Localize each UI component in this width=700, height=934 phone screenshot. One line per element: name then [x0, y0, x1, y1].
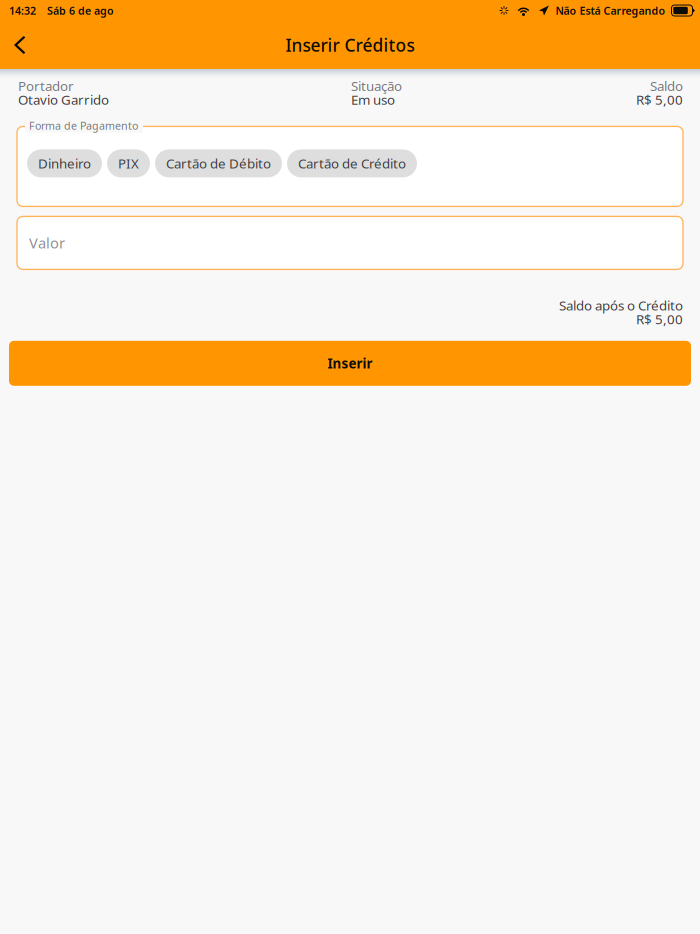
button[interactable]: Dinheiro: [27, 149, 102, 177]
staticText: Portador: [18, 77, 74, 95]
staticText: 14:32: [9, 3, 36, 18]
staticText: Cartão de Crédito: [298, 155, 406, 172]
staticText: Inserir Créditos: [285, 33, 414, 56]
staticText: Não Está Carregando: [555, 3, 665, 18]
button[interactable]: Inserir: [9, 341, 691, 386]
staticText: Valor: [29, 233, 65, 253]
button[interactable]: Cartão de Débito: [155, 149, 282, 177]
staticText: Inserir: [327, 354, 372, 372]
staticText: R$ 5,00: [636, 310, 683, 328]
staticText: Saldo: [650, 77, 683, 95]
staticText: Sáb 6 de ago: [47, 3, 114, 18]
button[interactable]: Cartão de Crédito: [287, 149, 417, 177]
staticText: Dinheiro: [38, 155, 91, 172]
button[interactable]: Voltar: [0, 24, 40, 65]
staticText: Em uso: [351, 91, 395, 108]
button[interactable]: PIX: [107, 149, 150, 177]
staticText: Otavio Garrido: [18, 91, 109, 108]
staticText: Cartão de Débito: [166, 155, 271, 172]
staticText: Situação: [351, 77, 402, 95]
staticText: Saldo após o Crédito: [559, 296, 683, 314]
staticText: Forma de Pagamento: [29, 118, 138, 133]
staticText: R$ 5,00: [636, 91, 683, 108]
staticText: PIX: [118, 155, 139, 172]
